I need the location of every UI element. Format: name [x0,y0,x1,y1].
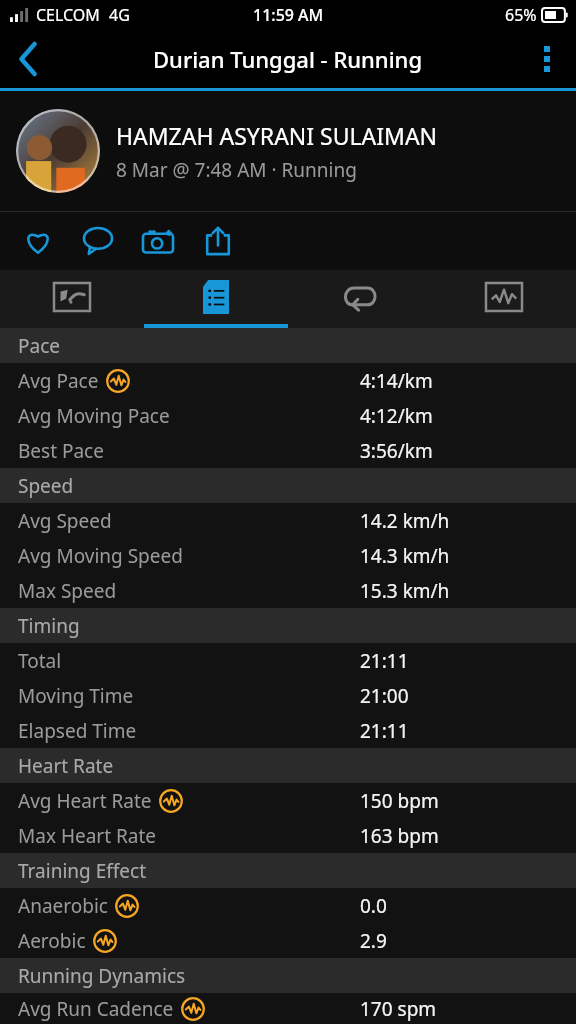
staticText: Elapsed Time [18,718,137,744]
staticText: 65% [505,4,537,26]
staticText: 3:56/km [360,438,433,464]
button[interactable]: More options [518,30,576,88]
button[interactable]: Add photo [138,221,178,261]
button[interactable]: Avg Heart Rate [0,783,576,818]
button[interactable]: Avg Moving Pace [0,398,576,433]
staticText: 14.3 km/h [360,543,450,569]
staticText: Avg Moving Speed [18,543,183,569]
staticText: CELCOM [36,4,100,26]
button[interactable]: Map [0,270,144,324]
staticText: Heart Rate [18,753,114,779]
staticText: Aerobic [18,928,86,954]
button[interactable]: Details [144,270,288,324]
button[interactable]: Charts [432,270,576,324]
button[interactable]: Avg Moving Speed [0,538,576,573]
button[interactable]: Comment [78,221,118,261]
button[interactable]: Max Speed [0,573,576,608]
staticText: Timing [18,613,80,639]
staticText: 4:12/km [360,403,433,429]
staticText: 14.2 km/h [360,508,450,534]
staticText: 21:00 [360,683,409,709]
button[interactable]: Avg Pace [0,363,576,398]
button[interactable]: Max Heart Rate [0,818,576,853]
button[interactable]: Laps [288,270,432,324]
button[interactable]: Moving Time [0,678,576,713]
staticText: Max Speed [18,578,117,604]
staticText: 163 bpm [360,823,439,849]
staticText: Pace [18,333,60,359]
staticText: 170 spm [360,996,437,1022]
staticText: 15.3 km/h [360,578,450,604]
staticText: Total [18,648,62,674]
staticText: 2.9 [360,928,387,954]
staticText: Running Dynamics [18,963,186,989]
button[interactable]: Elapsed Time [0,713,576,748]
staticText: 11:59 AM [253,4,324,26]
button[interactable]: Best Pace [0,433,576,468]
staticText: Avg Pace [18,368,99,394]
button[interactable]: Total [0,643,576,678]
staticText: Avg Moving Pace [18,403,170,429]
staticText: Training Effect [18,858,146,884]
button[interactable]: Share [198,221,238,261]
staticText: Moving Time [18,683,134,709]
button[interactable]: Back [0,30,58,88]
staticText: HAMZAH ASYRANI SULAIMAN [116,120,438,151]
staticText: Speed [18,473,74,499]
staticText: Anaerobic [18,893,108,919]
staticText: Max Heart Rate [18,823,157,849]
button[interactable]: Avg Speed [0,503,576,538]
staticText: 21:11 [360,648,409,674]
button[interactable]: Avg Run Cadence [0,993,576,1024]
staticText: Durian Tunggal - Running [153,44,423,74]
staticText: Avg Heart Rate [18,788,152,814]
button[interactable]: Aerobic [0,923,576,958]
staticText: 21:11 [360,718,409,744]
staticText: 150 bpm [360,788,439,814]
button[interactable]: Anaerobic [0,888,576,923]
staticText: 4:14/km [360,368,433,394]
staticText: Best Pace [18,438,104,464]
staticText: Avg Speed [18,508,112,534]
button[interactable]: Profile photo [16,109,100,193]
staticText: Avg Run Cadence [18,996,174,1022]
staticText: 0.0 [360,893,387,919]
button[interactable]: Like [18,221,58,261]
staticText: 4G [109,4,130,26]
staticText: 8 Mar @ 7:48 AM · Running [116,157,357,183]
